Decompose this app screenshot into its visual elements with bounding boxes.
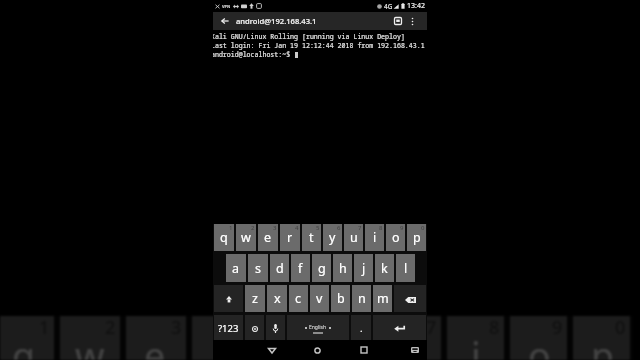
staticText: p	[591, 331, 615, 360]
button[interactable]: p	[573, 316, 630, 360]
button[interactable]: d	[270, 254, 289, 282]
staticText: j	[362, 260, 366, 277]
staticText: r	[287, 229, 293, 246]
button[interactable]: n	[352, 285, 371, 312]
button[interactable]: w	[60, 316, 120, 360]
staticText: p	[413, 229, 421, 246]
staticText: 7	[358, 224, 362, 232]
button[interactable]: b	[331, 285, 350, 312]
staticText: android@localhost:~$	[213, 50, 295, 59]
button[interactable]: Sessions	[390, 12, 406, 30]
button[interactable]: ?123	[214, 315, 243, 340]
button[interactable]: u	[384, 316, 441, 360]
button[interactable]: y	[323, 224, 342, 251]
button[interactable]: .	[351, 315, 371, 340]
button[interactable]: z	[245, 285, 265, 312]
staticText: 0	[421, 224, 425, 232]
staticText: ?123	[218, 322, 239, 335]
button[interactable]: Settings	[245, 315, 264, 340]
button[interactable]: o	[386, 224, 405, 251]
button[interactable]: Enter	[373, 315, 426, 340]
button[interactable]: i	[365, 224, 384, 251]
button[interactable]: e	[126, 316, 186, 360]
button[interactable]: q	[214, 224, 234, 251]
staticText: 2	[251, 224, 255, 232]
staticText: t	[279, 331, 294, 360]
staticText: r	[213, 331, 231, 360]
button[interactable]: Shift	[214, 285, 243, 312]
button[interactable]: Home	[305, 340, 330, 360]
staticText: x	[274, 290, 281, 307]
staticText: c	[295, 290, 302, 307]
staticText: 5	[300, 316, 312, 340]
button[interactable]: Navigate up	[213, 12, 236, 30]
button[interactable]: i	[447, 316, 504, 360]
staticText: VPN	[222, 4, 231, 9]
staticText: 7	[426, 316, 438, 340]
staticText: 6	[337, 224, 341, 232]
staticText: e	[144, 331, 168, 360]
staticText: o	[528, 331, 552, 360]
staticText: s	[255, 260, 261, 277]
staticText: 3	[273, 224, 277, 232]
button[interactable]: f	[291, 254, 310, 282]
button[interactable]: a	[226, 254, 246, 282]
staticText: e	[264, 229, 272, 246]
button[interactable]: o	[510, 316, 567, 360]
button[interactable]: s	[248, 254, 268, 282]
button[interactable]: g	[312, 254, 331, 282]
button[interactable]: r	[192, 316, 252, 360]
staticText: 4G	[384, 2, 393, 11]
staticText: i	[373, 229, 377, 246]
button[interactable]: x	[267, 285, 287, 312]
staticText: y	[329, 229, 336, 246]
button[interactable]: m	[373, 285, 392, 312]
button[interactable]: Back	[259, 340, 284, 360]
staticText: Last login: Fri Jan 19 12:12:44 2018 fro…	[213, 41, 425, 50]
button[interactable]: e	[258, 224, 278, 251]
button[interactable]: Space	[287, 315, 349, 340]
button[interactable]: t	[302, 224, 321, 251]
staticText: b	[337, 290, 345, 307]
staticText: 6	[363, 316, 375, 340]
staticText: 8	[379, 224, 383, 232]
staticText: a	[232, 260, 240, 277]
button[interactable]: w	[236, 224, 256, 251]
staticText: q	[12, 331, 36, 360]
button[interactable]: q	[0, 316, 54, 360]
staticText: n	[358, 290, 366, 307]
button[interactable]: l	[396, 254, 415, 282]
button[interactable]: t	[258, 316, 315, 360]
staticText: w	[75, 331, 105, 360]
button[interactable]: y	[321, 316, 378, 360]
button[interactable]: Hide keyboard	[403, 340, 427, 360]
staticText: g	[318, 260, 326, 277]
staticText: z	[252, 290, 258, 307]
button[interactable]: Delete	[394, 285, 426, 312]
staticText: i	[471, 331, 483, 360]
button[interactable]: Recent apps	[351, 340, 376, 360]
staticText: f	[298, 260, 303, 277]
button[interactable]: k	[375, 254, 394, 282]
button[interactable]: h	[333, 254, 352, 282]
button[interactable]: c	[289, 285, 308, 312]
button[interactable]: j	[354, 254, 373, 282]
button[interactable]: More options	[406, 12, 419, 30]
staticText: 5	[316, 224, 320, 232]
staticText: 4	[295, 224, 299, 232]
button[interactable]: p	[407, 224, 426, 251]
staticText: o	[392, 229, 400, 246]
staticText: t	[309, 229, 314, 246]
button[interactable]: Voice input	[266, 315, 285, 340]
staticText: android@192.168.43.1	[236, 16, 317, 26]
staticText: d	[276, 260, 284, 277]
button[interactable]: u	[344, 224, 363, 251]
staticText: 9	[400, 224, 404, 232]
button[interactable]: r	[280, 224, 300, 251]
staticText: u	[402, 331, 426, 360]
button[interactable]: v	[310, 285, 329, 312]
